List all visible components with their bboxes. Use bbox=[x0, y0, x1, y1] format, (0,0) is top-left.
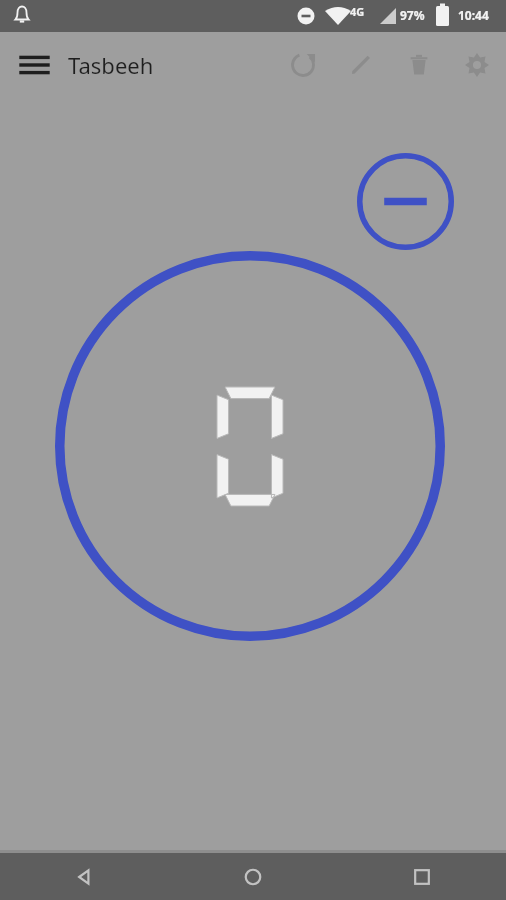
button[interactable]: Decrease count bbox=[356, 152, 455, 251]
button[interactable]: Increase count bbox=[54, 250, 446, 642]
button[interactable]: Recent apps bbox=[337, 853, 506, 900]
staticText: 4G bbox=[350, 4, 365, 19]
staticText: 97% bbox=[400, 7, 425, 23]
staticText: 10:44 bbox=[458, 7, 489, 23]
button[interactable]: Delete bbox=[390, 32, 448, 97]
button[interactable]: Home bbox=[168, 853, 337, 900]
button[interactable]: Back bbox=[0, 853, 168, 900]
button[interactable]: Open navigation drawer bbox=[0, 32, 68, 97]
button[interactable]: Settings bbox=[448, 32, 506, 97]
staticText: Tasbeeh bbox=[68, 50, 154, 80]
button[interactable]: Reset bbox=[274, 32, 332, 97]
